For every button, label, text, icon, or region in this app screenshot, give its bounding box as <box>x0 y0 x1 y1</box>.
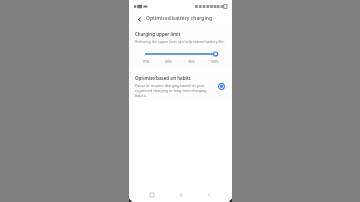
staticText: 90% <box>180 59 203 64</box>
button[interactable]: Optimise based on habits, selected <box>217 82 226 91</box>
button[interactable]: Back <box>134 14 144 24</box>
button[interactable]: Charging upper limit slider <box>135 50 226 58</box>
staticText: Charging upper limit <box>135 31 181 37</box>
button[interactable]: Home <box>175 189 187 201</box>
staticText: 80% <box>157 59 180 64</box>
staticText: 70% <box>135 59 157 64</box>
staticText: Pause or resume charging based on your r… <box>135 83 213 98</box>
button[interactable]: Optimise based on habits <box>129 72 232 101</box>
button[interactable]: Charging upper limit <box>129 28 232 69</box>
staticText: Optimised battery charging <box>146 15 212 22</box>
button[interactable]: Recents <box>146 189 158 201</box>
staticText: 100% <box>203 59 226 64</box>
staticText: Optimise based on habits <box>135 75 191 81</box>
staticText: Reducing the upper limit can help extend… <box>135 39 225 44</box>
button[interactable]: Back <box>203 189 215 201</box>
